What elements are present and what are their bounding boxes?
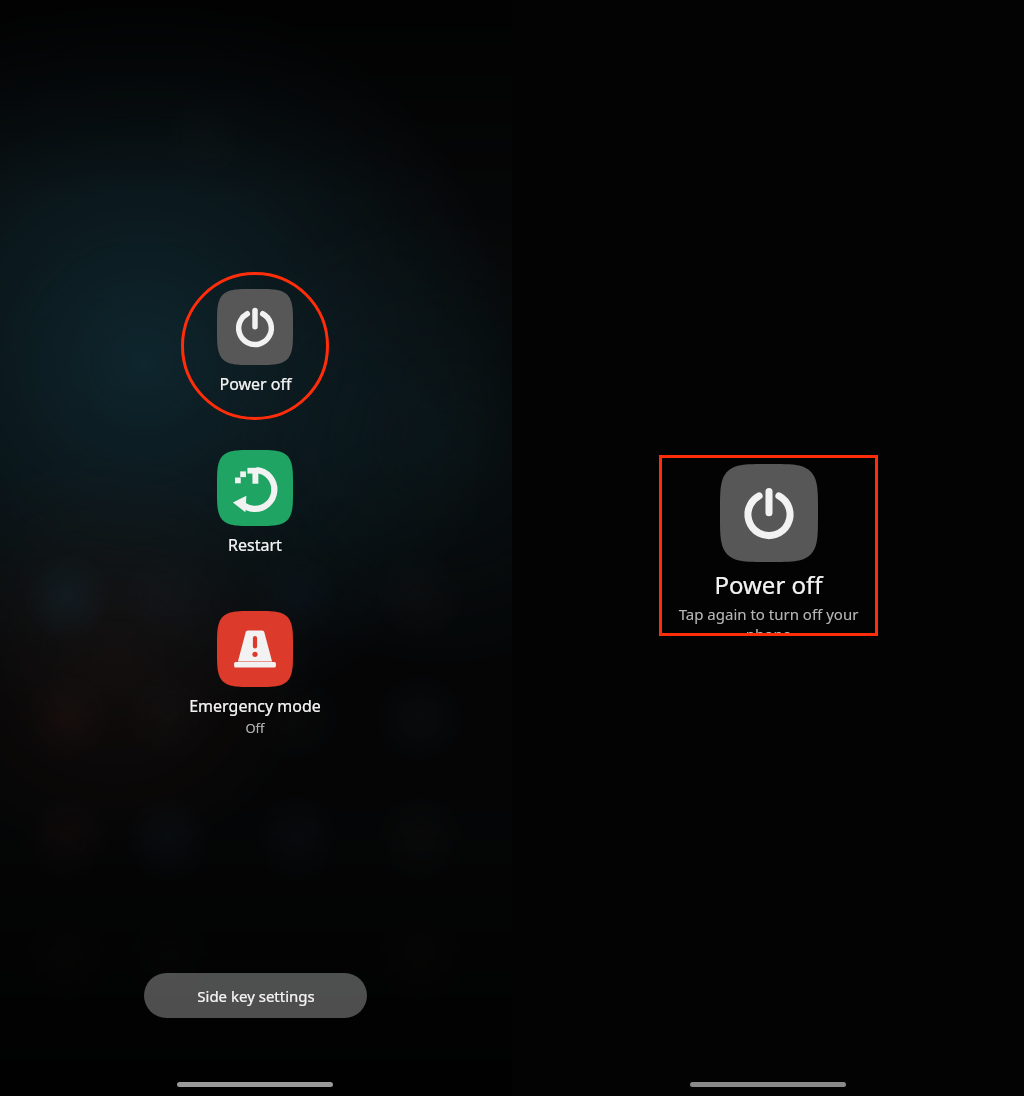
staticText: Restart [228,534,282,556]
button[interactable]: Emergency mode [161,611,349,739]
button[interactable]: Side key settings [144,973,367,1018]
staticText: Tap again to turn off your phone [659,604,878,636]
button[interactable]: Power off, tap again to turn off your ph… [659,455,878,636]
staticText: Power off [714,568,823,601]
button[interactable]: Restart [181,450,329,562]
staticText: Emergency mode [189,695,321,717]
staticText: Side key settings [197,986,315,1006]
staticText: Off [245,719,265,737]
button[interactable]: Power off [181,272,329,420]
staticText: Power off [219,373,292,395]
